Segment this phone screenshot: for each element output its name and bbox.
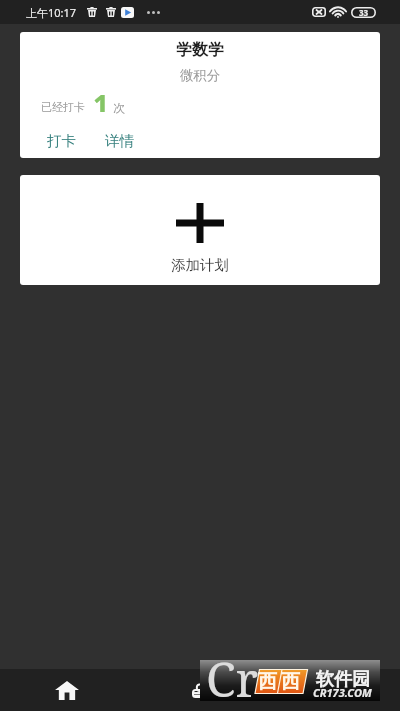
staticText: 次 [113,100,125,115]
button[interactable]: 添加计划 [20,175,380,285]
button[interactable]: 计划 [134,669,267,711]
staticText: 33 [359,7,369,18]
staticText: 学数学 [20,40,380,60]
button[interactable]: 首页 [0,669,134,711]
staticText: 详情 [105,132,134,150]
staticText: 1 [93,86,105,112]
button[interactable]: 学数学 [20,32,380,158]
staticText: CR173.COM [313,685,372,700]
staticText: 打卡 [47,132,76,150]
staticText: 微积分 [20,67,380,84]
staticText: 已经打卡 [41,100,85,114]
button[interactable]: 打卡 [39,127,84,155]
staticText: 添加计划 [20,256,380,274]
button[interactable]: 我的 [267,669,400,711]
staticText: 软件园 [316,668,370,691]
staticText: 上午10:17 [26,5,77,20]
staticText: 西 [258,670,277,694]
staticText: Cr [206,646,259,711]
staticText: 西 [281,670,300,694]
button[interactable]: 详情 [97,127,142,155]
